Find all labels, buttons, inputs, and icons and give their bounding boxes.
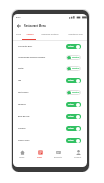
button[interactable]: Chicken bbox=[13, 122, 87, 134]
button[interactable]: Seafood bbox=[13, 98, 87, 110]
staticText: Requests bbox=[54, 156, 63, 158]
button[interactable]: Inactive bbox=[66, 66, 81, 71]
button[interactable]: Active bbox=[66, 78, 81, 83]
staticText: Restaurant Menu bbox=[24, 24, 47, 27]
staticText: Required Options bbox=[41, 33, 59, 36]
staticText: Cuisine bbox=[26, 33, 34, 36]
staticText: Inactive bbox=[72, 91, 80, 94]
button[interactable]: Home bbox=[13, 146, 31, 167]
staticText: Active bbox=[68, 79, 74, 82]
staticText: Chicken bbox=[18, 127, 66, 130]
staticText: French Fries bbox=[18, 139, 66, 142]
button[interactable]: Inactive bbox=[66, 90, 81, 95]
staticText: Food bbox=[16, 33, 21, 36]
button[interactable]: Active bbox=[66, 138, 81, 143]
button[interactable]: Additional Info bbox=[63, 30, 87, 39]
button[interactable]: Active bbox=[66, 44, 81, 49]
button[interactable]: Tea bbox=[13, 74, 87, 86]
staticText: Active bbox=[68, 115, 74, 118]
staticText: Water bbox=[18, 67, 66, 70]
staticText: Homemade Waffle/Pancakes bbox=[18, 56, 66, 59]
staticText: Home bbox=[19, 156, 25, 158]
button[interactable]: Active bbox=[66, 126, 81, 131]
button[interactable]: Chocolate Bars bbox=[13, 41, 87, 52]
button[interactable]: Required Options bbox=[37, 30, 63, 39]
staticText: Active bbox=[68, 45, 74, 48]
staticText: Seafood bbox=[18, 103, 66, 106]
staticText: Chocolate Bars bbox=[18, 45, 66, 48]
button[interactable]: Menu bbox=[31, 146, 49, 167]
staticText: Additional Info bbox=[68, 33, 83, 36]
staticText: Account bbox=[74, 156, 82, 158]
button[interactable]: Account bbox=[68, 146, 87, 167]
staticText: Soft Drinks bbox=[18, 91, 66, 94]
button[interactable]: Beef Biryani bbox=[13, 110, 87, 122]
button[interactable]: Inactive bbox=[66, 55, 81, 60]
staticText: Active bbox=[68, 139, 74, 142]
staticText: Beef Biryani bbox=[18, 115, 66, 118]
button[interactable]: Active bbox=[66, 102, 81, 107]
button[interactable]: French Fries bbox=[13, 134, 87, 146]
button[interactable]: Water bbox=[13, 63, 87, 74]
button[interactable]: Requests bbox=[49, 146, 68, 167]
staticText: Active bbox=[68, 127, 74, 130]
staticText: Inactive bbox=[72, 56, 80, 59]
staticText: Inactive bbox=[72, 67, 80, 70]
button[interactable]: Cuisine bbox=[23, 30, 37, 39]
staticText: Menu bbox=[37, 156, 43, 158]
staticText: Tea bbox=[18, 79, 66, 82]
button[interactable]: Back bbox=[15, 22, 23, 30]
button[interactable]: Food bbox=[13, 30, 23, 39]
button[interactable]: Active bbox=[66, 114, 81, 119]
staticText: Active bbox=[68, 103, 74, 106]
staticText: 9:41 bbox=[16, 16, 21, 19]
button[interactable]: Homemade Waffle/Pancakes bbox=[13, 52, 87, 63]
button[interactable]: Soft Drinks bbox=[13, 86, 87, 98]
